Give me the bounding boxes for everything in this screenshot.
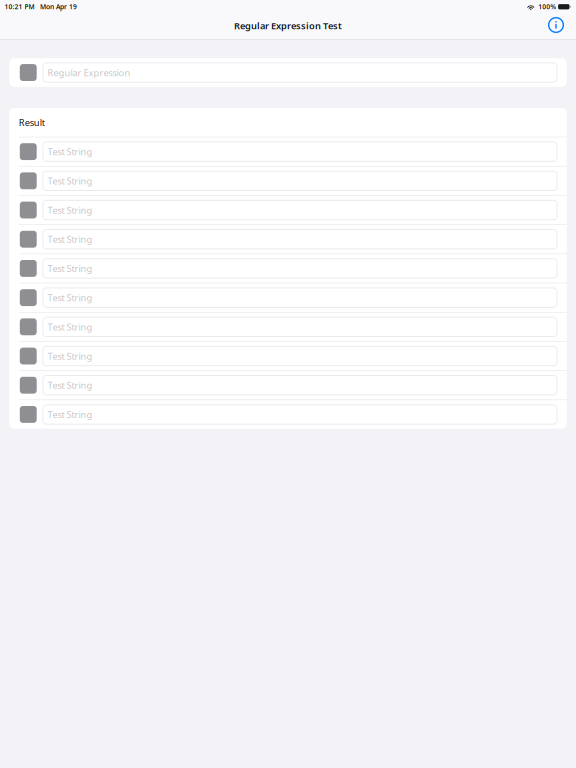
staticText: Test String bbox=[47, 379, 92, 391]
button[interactable]: Test String bbox=[43, 405, 557, 424]
button[interactable]: Toggle bbox=[20, 64, 37, 81]
button[interactable]: Toggle bbox=[20, 377, 37, 394]
button[interactable]: Toggle bbox=[20, 143, 37, 160]
staticText: Test String bbox=[47, 262, 92, 275]
button[interactable]: Test String bbox=[43, 200, 557, 220]
button[interactable]: Test String bbox=[43, 229, 557, 249]
staticText: Test String bbox=[47, 175, 92, 187]
button[interactable]: Toggle bbox=[20, 289, 37, 306]
button[interactable]: Toggle bbox=[20, 231, 37, 248]
staticText: 100% bbox=[538, 2, 556, 11]
staticText: 10:21 PM bbox=[4, 2, 34, 11]
button[interactable]: Test String bbox=[43, 375, 557, 395]
staticText: Test String bbox=[47, 291, 92, 304]
button[interactable]: Test String bbox=[43, 259, 557, 278]
button[interactable]: Test String bbox=[43, 317, 557, 336]
button[interactable]: Info bbox=[545, 13, 567, 39]
staticText: Test String bbox=[47, 204, 92, 216]
button[interactable]: Toggle bbox=[20, 348, 37, 364]
button[interactable]: Toggle bbox=[20, 172, 37, 189]
staticText: Test String bbox=[47, 233, 92, 245]
staticText: Regular Expression Test bbox=[234, 19, 342, 32]
staticText: Mon Apr 19 bbox=[40, 2, 77, 11]
staticText: Test String bbox=[47, 145, 92, 158]
button[interactable]: Test String bbox=[43, 142, 557, 161]
button[interactable]: Test String bbox=[43, 346, 557, 366]
button[interactable]: Toggle bbox=[20, 202, 37, 218]
staticText: Test String bbox=[47, 408, 92, 421]
staticText: Result bbox=[19, 116, 45, 128]
button[interactable]: Toggle bbox=[20, 260, 37, 277]
staticText: Test String bbox=[47, 350, 92, 362]
staticText: Test String bbox=[47, 321, 92, 333]
button[interactable]: Test String bbox=[43, 171, 557, 190]
button[interactable]: Regular Expression bbox=[43, 63, 557, 82]
button[interactable]: Toggle bbox=[20, 318, 37, 335]
button[interactable]: Test String bbox=[43, 288, 557, 307]
button[interactable]: Toggle bbox=[20, 406, 37, 423]
staticText: Regular Expression bbox=[47, 66, 130, 79]
